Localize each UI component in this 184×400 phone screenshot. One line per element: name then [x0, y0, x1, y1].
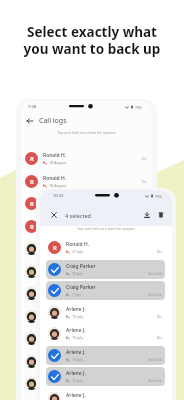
- button[interactable]: Arlene J.: [25, 329, 150, 348]
- button[interactable]: Craig Parker: [46, 260, 165, 279]
- staticText: On: [142, 157, 147, 161]
- staticText: 7 July: [72, 292, 81, 297]
- staticText: Arlene J.: [66, 370, 86, 377]
- staticText: 18 August: [49, 273, 67, 278]
- staticText: R: [53, 244, 57, 252]
- staticText: On: [157, 250, 162, 254]
- staticText: 10 July: [72, 335, 84, 340]
- staticText: 27 July: [72, 249, 84, 254]
- button[interactable]: Arlene J.: [25, 374, 150, 393]
- staticText: Craig Parker: [66, 263, 96, 270]
- staticText: Mon 4Gb: [148, 272, 162, 276]
- staticText: Ronald H.: [43, 175, 67, 182]
- staticText: Arlene J.: [66, 392, 86, 399]
- staticText: Mon 4Gb: [148, 379, 162, 383]
- staticText: Call logs: [39, 116, 67, 126]
- button[interactable]: Close: [49, 210, 59, 220]
- staticText: Arlene J.: [66, 327, 86, 334]
- button[interactable]: R: [25, 149, 150, 168]
- staticText: Arlene J.: [43, 310, 63, 317]
- button[interactable]: Craig Parker: [46, 281, 165, 300]
- staticText: Arlene J.: [43, 287, 63, 294]
- button[interactable]: Back: [26, 113, 152, 128]
- other: Back: [26, 117, 34, 125]
- staticText: 10:33: [53, 193, 64, 198]
- staticText: Arlene J.: [43, 332, 63, 339]
- button[interactable]: Arlene J.: [46, 389, 165, 400]
- staticText: Arlene J.: [43, 355, 63, 362]
- button[interactable]: Back up: [142, 210, 152, 220]
- staticText: Arlene J.: [66, 349, 86, 356]
- staticText: Arlene J.: [43, 265, 63, 272]
- staticText: 18 August: [49, 385, 67, 390]
- staticText: Arlene J.: [43, 377, 63, 384]
- button[interactable]: R: [46, 238, 165, 257]
- staticText: R: [30, 155, 34, 163]
- staticText: 10 July: [72, 314, 84, 319]
- staticText: Mon 4Gb: [148, 358, 162, 362]
- staticText: R: [30, 223, 34, 231]
- staticText: On: [142, 225, 147, 229]
- staticText: On: [157, 336, 162, 340]
- button[interactable]: Arlene J.: [25, 397, 150, 400]
- staticText: 18 August: [49, 363, 67, 368]
- button[interactable]: Arlene J.: [25, 352, 150, 371]
- staticText: 10 July: [72, 271, 84, 276]
- staticText: 75%: [155, 194, 162, 199]
- button[interactable]: Arlene J.: [25, 239, 150, 258]
- button[interactable]: Arlene J.: [46, 346, 165, 365]
- staticText: Select exactly what you want to back up: [0, 23, 184, 58]
- button[interactable]: Delete: [156, 210, 166, 220]
- staticText: 18 August: [49, 318, 67, 323]
- staticText: 18 August: [49, 183, 67, 188]
- staticText: Ronald H.: [66, 241, 90, 248]
- staticText: Mon 4Gb: [148, 293, 162, 297]
- staticText: 7:08: [28, 104, 36, 109]
- staticText: 76%: [135, 105, 142, 110]
- button[interactable]: Arlene J.: [25, 307, 150, 326]
- staticText: 18 August: [49, 295, 67, 300]
- button[interactable]: R: [25, 172, 150, 191]
- staticText: 10 July: [72, 378, 84, 383]
- button[interactable]: Arlene J.: [46, 324, 165, 343]
- button[interactable]: Arlene J.: [46, 367, 165, 386]
- staticText: R: [30, 178, 34, 186]
- staticText: Ronald H.: [43, 152, 67, 159]
- staticText: Arlene J.: [66, 306, 86, 313]
- button[interactable]: Arlene J.: [25, 284, 150, 303]
- button[interactable]: Arlene J.: [46, 303, 165, 322]
- staticText: On: [157, 315, 162, 319]
- staticText: 18 August: [49, 160, 67, 165]
- staticText: 4 selected: [65, 212, 91, 219]
- staticText: Tap and hold on a item for options: [40, 226, 172, 231]
- staticText: 10 July: [72, 357, 84, 362]
- button[interactable]: R: [25, 194, 150, 213]
- staticText: Craig Parker: [66, 284, 96, 291]
- staticText: On: [142, 180, 147, 184]
- button[interactable]: R: [25, 217, 150, 236]
- staticText: Ronald H.: [43, 220, 67, 227]
- staticText: Arlene J.: [43, 242, 63, 249]
- button[interactable]: Arlene J.: [25, 262, 150, 281]
- staticText: Tap and hold on a item for options: [21, 130, 152, 135]
- staticText: R: [30, 200, 34, 208]
- staticText: 18 August: [49, 250, 67, 255]
